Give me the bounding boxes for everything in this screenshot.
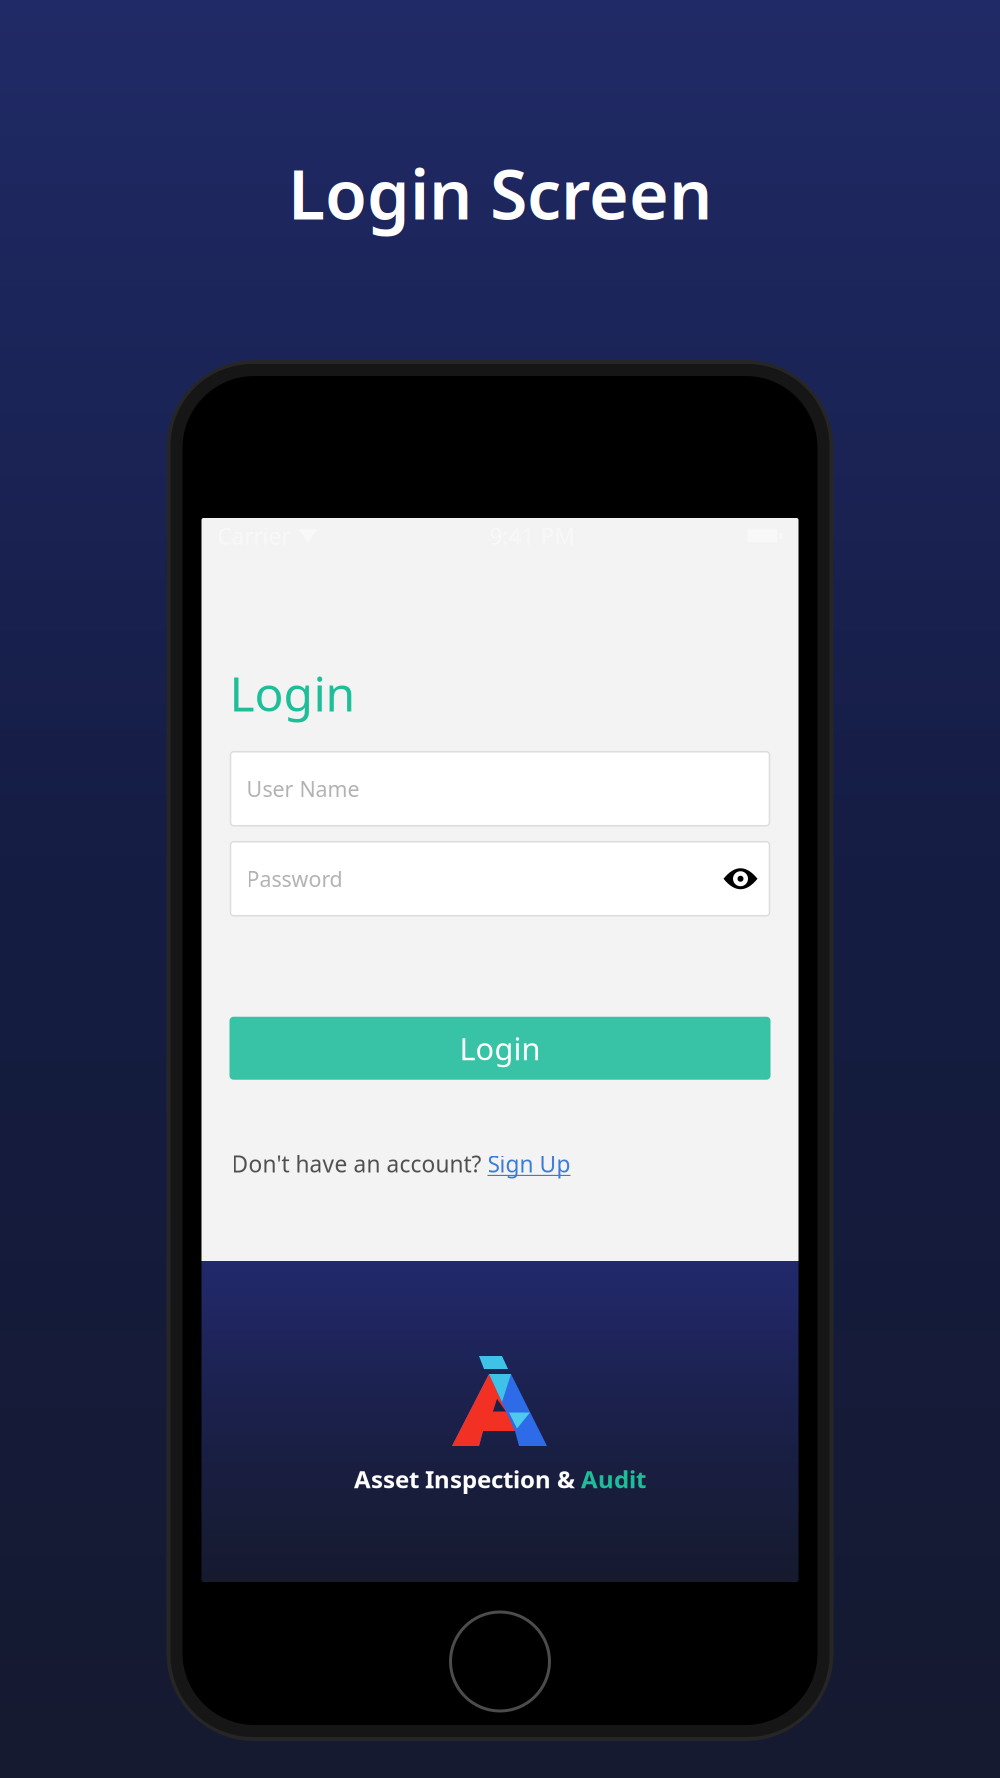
button[interactable]: Show password bbox=[723, 862, 757, 896]
staticText: Audit bbox=[581, 1463, 646, 1495]
staticText: Sign Up bbox=[487, 1149, 570, 1179]
button[interactable]: Sign Up bbox=[487, 1149, 570, 1179]
staticText: Password bbox=[246, 865, 342, 893]
staticText: Login Screen bbox=[288, 148, 712, 238]
staticText: Login bbox=[229, 661, 355, 725]
staticText: Login bbox=[459, 1028, 540, 1069]
staticText: User Name bbox=[246, 775, 359, 803]
staticText: Don't have an account? bbox=[231, 1149, 487, 1179]
button[interactable]: Login bbox=[229, 1017, 770, 1080]
staticText: Asset Inspection & bbox=[354, 1463, 581, 1495]
